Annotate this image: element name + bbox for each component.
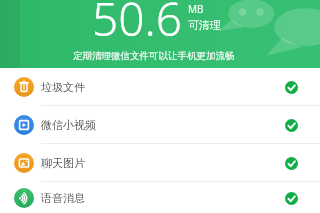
button[interactable]: 垃圾文件	[0, 68, 320, 105]
button[interactable]: 聊天图片	[0, 144, 320, 181]
staticText: 垃圾文件	[41, 80, 85, 94]
button[interactable]: 微信小视频	[0, 106, 320, 143]
staticText: 语音消息	[41, 191, 85, 205]
button[interactable]: 语音消息	[0, 182, 320, 213]
staticText: 定期清理微信文件可以让手机更加流畅	[73, 50, 235, 62]
button[interactable]: Selected	[279, 75, 303, 99]
staticText: 微信小视频	[41, 118, 96, 132]
staticText: 50.6	[92, 0, 183, 50]
staticText: MB	[188, 2, 204, 16]
staticText: 可清理	[188, 18, 221, 32]
staticText: 聊天图片	[41, 156, 85, 170]
button[interactable]: Selected	[279, 113, 303, 137]
button[interactable]: Selected	[279, 151, 303, 175]
button[interactable]: Selected	[279, 186, 303, 210]
